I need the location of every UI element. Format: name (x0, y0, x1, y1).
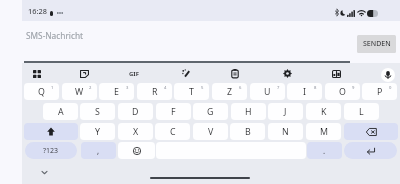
button[interactable]: GIF (114, 64, 154, 83)
button[interactable]: ?123 (25, 142, 77, 159)
staticText: Z (227, 86, 233, 98)
staticText: 6 (239, 85, 242, 91)
staticText: A (58, 106, 64, 118)
staticText: S (95, 106, 100, 118)
button[interactable]: Stickers (64, 64, 104, 83)
button[interactable]: E (99, 83, 134, 100)
staticText: U (264, 86, 271, 98)
button[interactable]: Enter (344, 142, 397, 159)
button[interactable]: J (268, 103, 303, 120)
staticText: 7 (277, 85, 280, 91)
button[interactable]: D (118, 103, 153, 120)
button[interactable]: Y (80, 123, 115, 140)
staticText: R (152, 86, 158, 98)
button[interactable]: A (43, 103, 78, 120)
staticText: I (303, 86, 306, 98)
staticText: ?123 (43, 146, 59, 156)
staticText: GIF (129, 70, 139, 78)
staticText: T (189, 86, 194, 98)
staticText: C (170, 126, 176, 138)
button[interactable]: Emoji (118, 142, 155, 159)
staticText: K (321, 106, 327, 118)
staticText: X (133, 126, 139, 138)
staticText: B (245, 126, 251, 138)
button[interactable]: T (174, 83, 209, 100)
button[interactable]: F (156, 103, 191, 120)
staticText: 4 (164, 85, 167, 91)
button[interactable]: Translate (316, 64, 356, 83)
button[interactable]: W (62, 83, 97, 100)
button[interactable]: I (287, 83, 322, 100)
staticText: SENDEN (363, 39, 391, 49)
staticText: H (245, 106, 252, 118)
staticText: Y (95, 126, 100, 138)
button[interactable]: P (362, 83, 397, 100)
staticText: 1 (51, 85, 54, 91)
button[interactable]: C (155, 123, 190, 140)
button[interactable]: S (80, 103, 115, 120)
staticText: 8 (314, 85, 317, 91)
staticText: 0 (389, 85, 392, 91)
staticText: E (114, 86, 119, 98)
button[interactable]: M (306, 123, 341, 140)
staticText: F (171, 106, 176, 118)
button[interactable]: SENDEN (357, 35, 396, 53)
staticText: M (320, 126, 328, 138)
button[interactable]: U (250, 83, 285, 100)
staticText: , (97, 145, 100, 156)
button[interactable]: G (193, 103, 228, 120)
button[interactable]: H (231, 103, 266, 120)
staticText: SMS-Nachricht (26, 30, 84, 41)
staticText: . (323, 145, 326, 156)
staticText: W (75, 86, 84, 98)
button[interactable]: , (81, 142, 116, 159)
staticText: V (208, 126, 214, 138)
button[interactable]: Hide keyboard (36, 164, 52, 180)
button[interactable]: Effects (166, 64, 206, 83)
staticText: N (282, 126, 289, 138)
button[interactable]: Settings (267, 64, 307, 83)
button[interactable]: Backspace (344, 123, 398, 140)
button[interactable]: V (193, 123, 228, 140)
button[interactable]: O (325, 83, 360, 100)
staticText: 5 (201, 85, 204, 91)
staticText: P (377, 86, 383, 98)
button[interactable]: K (306, 103, 341, 120)
staticText: 3 (126, 85, 129, 91)
button[interactable]: Keyboard modes (17, 64, 57, 83)
staticText: L (359, 106, 364, 118)
button[interactable]: Z (212, 83, 247, 100)
button[interactable]: B (230, 123, 265, 140)
staticText: O (339, 86, 346, 98)
button[interactable]: R (137, 83, 172, 100)
staticText: 2 (89, 85, 92, 91)
staticText: D (132, 106, 139, 118)
button[interactable]: Q (24, 83, 59, 100)
button[interactable]: Clipboard (215, 64, 255, 83)
button[interactable]: N (268, 123, 303, 140)
staticText: J (284, 106, 287, 118)
staticText: 9 (352, 85, 355, 91)
button[interactable]: . (307, 142, 342, 159)
staticText: G (207, 106, 214, 118)
staticText: Q (38, 86, 45, 98)
button[interactable]: Shift (24, 123, 78, 140)
button[interactable]: L (344, 103, 379, 120)
staticText: 16:28 (28, 6, 47, 16)
button[interactable]: X (118, 123, 153, 140)
button[interactable]: Voice input (381, 68, 395, 82)
